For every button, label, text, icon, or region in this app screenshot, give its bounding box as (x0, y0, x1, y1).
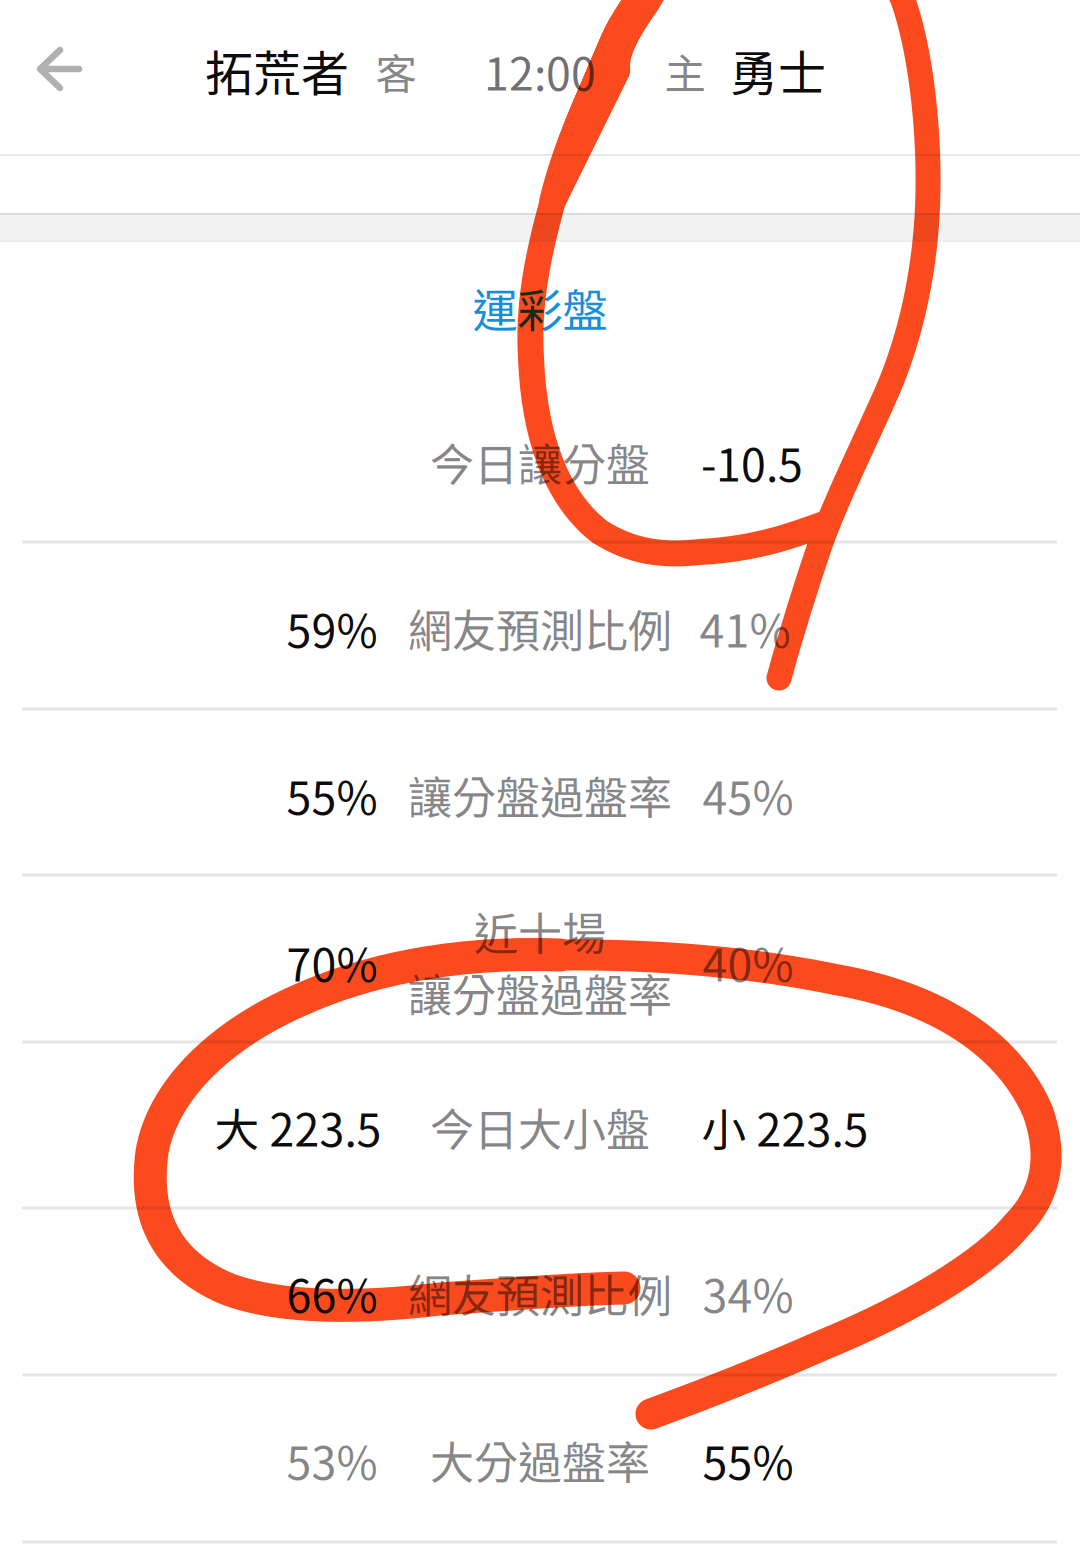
staticText: 拓荒者 (205, 35, 349, 105)
button[interactable]: 66% (0, 1208, 1080, 1375)
staticText: 55% (702, 1428, 793, 1492)
staticText: 讓分盤過盤率 (408, 763, 672, 827)
button[interactable]: Back (0, 0, 118, 140)
staticText: 運彩盤 (472, 275, 607, 341)
staticText: 41% (699, 596, 790, 660)
staticText: 網友預測比例 (408, 596, 672, 660)
staticText: 勇士 (730, 35, 826, 105)
staticText: 大 223.5 (214, 1095, 381, 1159)
staticText: 55% (286, 763, 377, 827)
staticText: 客 (375, 41, 416, 101)
button[interactable]: 今日讓分盤 (0, 376, 1080, 542)
staticText: 近十場 (474, 899, 606, 963)
staticText: 小 223.5 (701, 1095, 868, 1159)
staticText: 主 (664, 41, 705, 101)
staticText: 70% (286, 930, 377, 994)
staticText: 66% (286, 1261, 377, 1325)
button[interactable]: 55% (0, 709, 1080, 875)
staticText: 34% (702, 1261, 793, 1325)
staticText: 53% (286, 1428, 377, 1492)
staticText: 今日讓分盤 (430, 430, 650, 494)
staticText: 45% (702, 763, 793, 827)
staticText: 大分過盤率 (430, 1428, 650, 1492)
staticText: 讓分盤過盤率 (408, 961, 672, 1025)
button[interactable]: 59% (0, 542, 1080, 709)
staticText: 今日大小盤 (430, 1095, 650, 1159)
staticText: 12:00 (484, 39, 596, 103)
button[interactable]: 運彩盤 (380, 253, 700, 363)
staticText: 59% (286, 596, 377, 660)
button[interactable]: 大 223.5 (0, 1042, 1080, 1208)
staticText: -10.5 (701, 430, 803, 494)
button[interactable]: 70% (0, 875, 1080, 1042)
staticText: 網友預測比例 (408, 1261, 672, 1325)
button[interactable]: 53% (0, 1375, 1080, 1542)
staticText: 40% (702, 930, 793, 994)
